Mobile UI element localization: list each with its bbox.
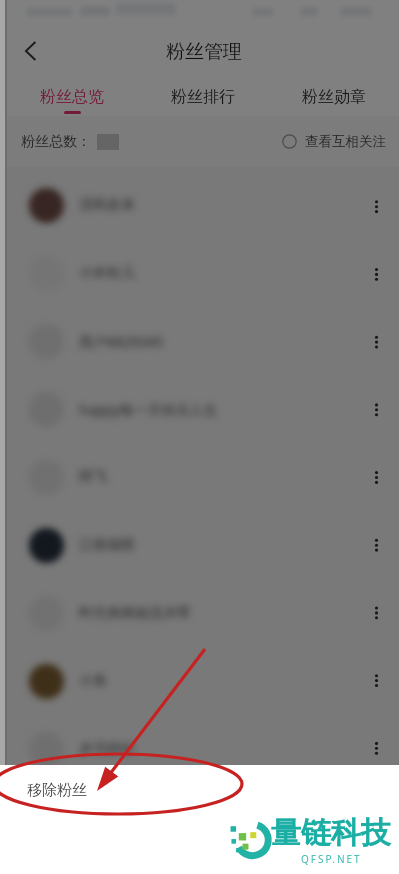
staticText: QFSP.NET <box>301 852 362 866</box>
staticText: 江南烟雨 <box>79 536 135 554</box>
button[interactable]: 查看互相关注 <box>282 133 386 150</box>
button[interactable]: More options <box>355 168 399 236</box>
staticText: 粉丝总数： <box>21 133 91 151</box>
button[interactable]: More options <box>355 304 399 372</box>
staticText: 用户6829345 <box>79 332 164 351</box>
staticText: 清风徐来 <box>79 196 135 214</box>
staticText: 岁月静好 <box>79 740 135 758</box>
button[interactable]: More options <box>355 576 399 644</box>
staticText: 小鱼 <box>79 672 107 690</box>
button[interactable]: More options <box>355 712 399 780</box>
button[interactable]: 粉丝总览 <box>7 75 137 117</box>
staticText: 阿飞 <box>79 468 107 486</box>
button[interactable]: 移除粉丝 <box>0 765 399 815</box>
staticText: 时光匆匆如流水呀 <box>79 604 191 622</box>
button[interactable]: More options <box>0 440 399 508</box>
button[interactable]: 粉丝排行 <box>137 75 268 117</box>
button[interactable]: More options <box>355 372 399 440</box>
button[interactable]: Back <box>8 28 54 74</box>
button[interactable]: More options <box>355 644 399 712</box>
button[interactable]: 粉丝勋章 <box>268 75 399 117</box>
staticText: 粉丝排行 <box>171 87 235 107</box>
button[interactable]: More options <box>0 236 399 304</box>
staticText: 移除粉丝 <box>27 781 87 800</box>
button[interactable]: More options <box>0 372 399 440</box>
button[interactable]: More options <box>355 236 399 304</box>
button[interactable]: More options <box>0 168 399 236</box>
button[interactable]: More options <box>0 508 399 576</box>
button[interactable]: More options <box>0 712 399 780</box>
button[interactable]: More options <box>0 576 399 644</box>
button[interactable]: More options <box>355 508 399 576</box>
staticText: 粉丝总览 <box>40 87 104 107</box>
button[interactable]: More options <box>0 644 399 712</box>
staticText: 粉丝勋章 <box>302 87 366 107</box>
staticText: 查看互相关注 <box>305 133 386 150</box>
staticText: 小米粒儿 <box>79 264 135 282</box>
staticText: 量链科技 <box>271 814 391 852</box>
staticText: happy每一天快乐人生 <box>79 400 218 419</box>
button[interactable]: More options <box>355 440 399 508</box>
button[interactable]: More options <box>0 304 399 372</box>
staticText: 粉丝管理 <box>166 40 242 64</box>
